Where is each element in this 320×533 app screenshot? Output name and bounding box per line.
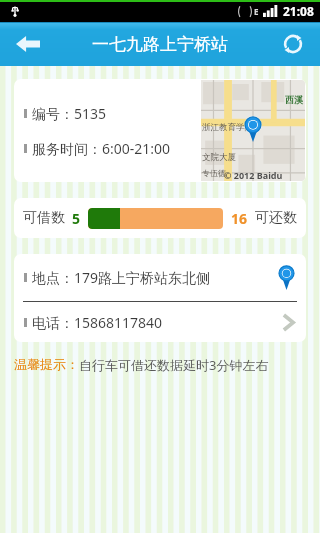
staticText: © 2012 Baidu: [224, 169, 283, 181]
staticText: 可借数: [23, 209, 65, 227]
staticText: 专伍德: [202, 168, 226, 178]
staticText: E: [254, 6, 259, 17]
staticText: 文院大厦: [202, 152, 236, 163]
staticText: 自行车可借还数据延时3分钟左右: [79, 356, 269, 374]
button[interactable]: 电话：15868117840: [14, 302, 306, 342]
staticText: 编号：5135: [32, 104, 107, 123]
staticText: 服务时间：6:00-21:00: [32, 139, 171, 158]
button[interactable]: Refresh: [272, 23, 314, 65]
button[interactable]: Map: [201, 80, 305, 181]
staticText: 一七九路上宁桥站: [92, 34, 228, 55]
staticText: 电话：15868117840: [32, 313, 163, 332]
staticText: 5: [72, 209, 81, 228]
staticText: 温馨提示：: [14, 356, 79, 372]
staticText: 16: [231, 209, 248, 228]
staticText: 浙江教育学院: [202, 122, 253, 133]
button[interactable]: Back: [6, 22, 50, 66]
staticText: 西溪: [285, 94, 303, 105]
staticText: 21:08: [283, 3, 314, 19]
button[interactable]: 地点：179路上宁桥站东北侧: [14, 254, 306, 301]
staticText: 可还数: [255, 209, 297, 227]
staticText: 地点：179路上宁桥站东北侧: [32, 268, 211, 287]
